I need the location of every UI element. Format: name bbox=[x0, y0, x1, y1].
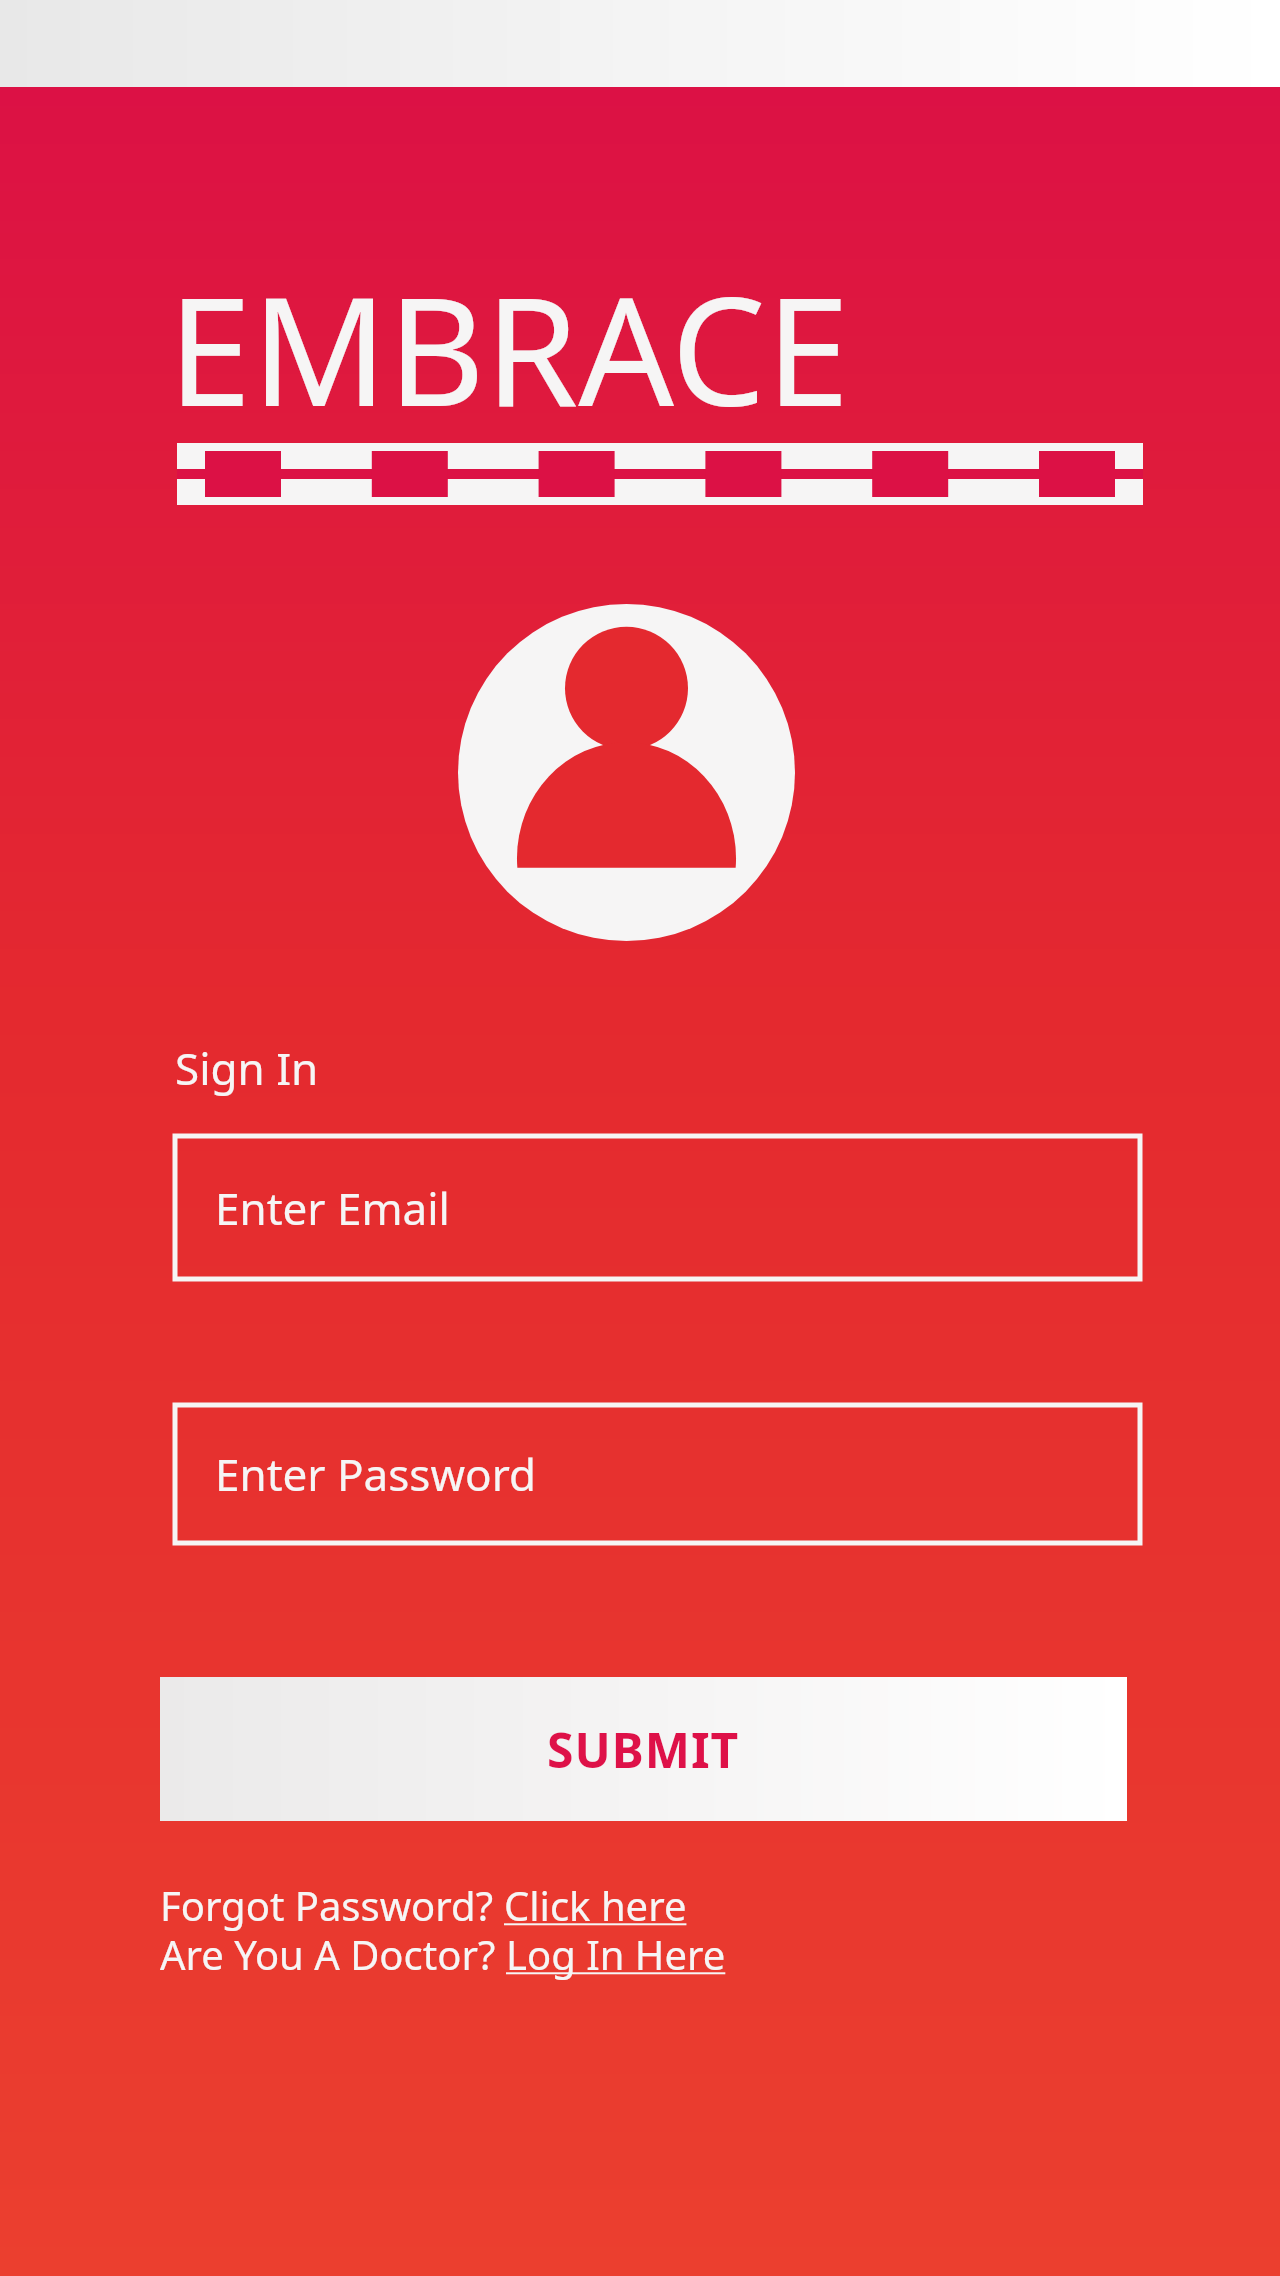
staticText: Sign In bbox=[175, 1038, 319, 1098]
staticText: Forgot Password? bbox=[160, 1878, 504, 1932]
staticText: Enter Password bbox=[215, 1444, 536, 1504]
button[interactable]: Click here bbox=[504, 1878, 687, 1932]
staticText: EMBRACE bbox=[168, 246, 850, 450]
other: Profile avatar bbox=[458, 604, 795, 941]
staticText: Log In Here bbox=[506, 1927, 726, 1981]
staticText: Enter Email bbox=[215, 1178, 450, 1238]
button[interactable]: Enter Password bbox=[175, 1405, 1140, 1543]
button[interactable]: SUBMIT bbox=[160, 1677, 1127, 1821]
button[interactable]: Log In Here bbox=[506, 1927, 726, 1981]
button[interactable]: Enter Email bbox=[175, 1136, 1140, 1279]
staticText: SUBMIT bbox=[547, 1717, 740, 1782]
staticText: Are You A Doctor? bbox=[160, 1927, 506, 1981]
staticText: Click here bbox=[504, 1878, 687, 1932]
